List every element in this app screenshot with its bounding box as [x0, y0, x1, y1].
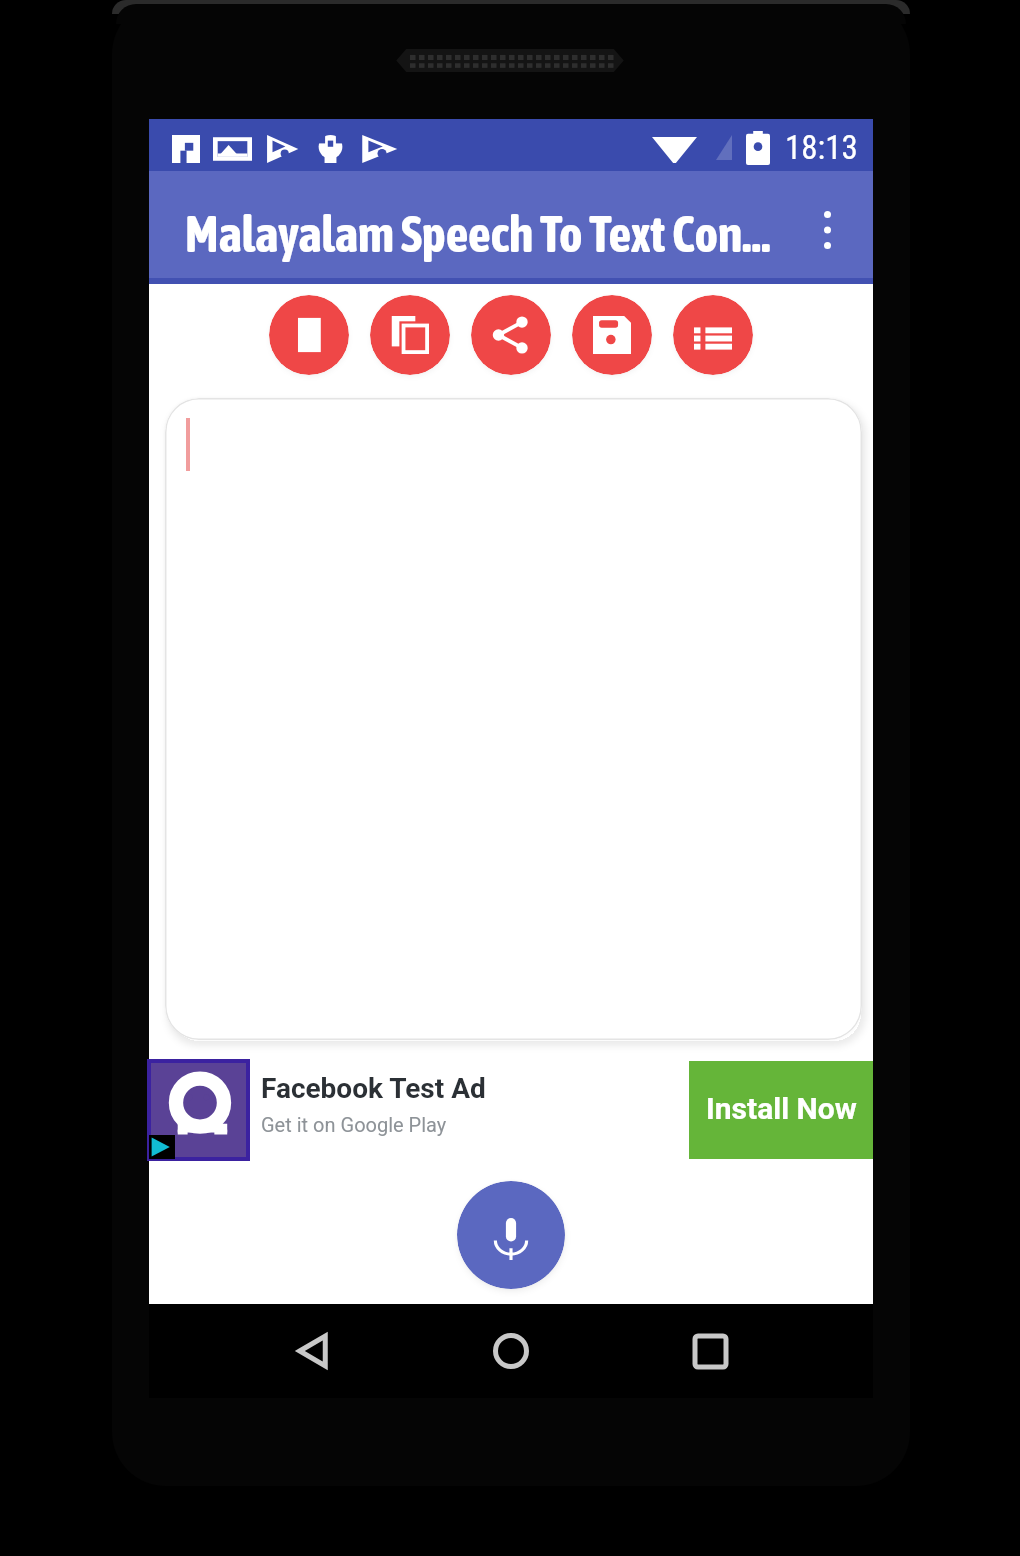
button[interactable]: Recent apps [674, 1315, 746, 1387]
button[interactable]: Saved list [673, 295, 753, 375]
button[interactable]: Copy text [370, 295, 450, 375]
button[interactable]: More options [799, 202, 855, 258]
button[interactable]: Advertisement [149, 1061, 248, 1159]
button[interactable] [165, 398, 862, 1040]
button[interactable]: Install Now [689, 1061, 873, 1159]
staticText: 18:13 [785, 128, 858, 167]
button[interactable]: Share text [471, 295, 551, 375]
button[interactable]: Home [475, 1315, 547, 1387]
button[interactable]: Clear text [269, 295, 349, 375]
button[interactable]: Start listening [457, 1181, 565, 1289]
button[interactable]: Facebook Test Ad [261, 1061, 689, 1159]
button[interactable]: Back [276, 1315, 348, 1387]
staticText: Malayalam Speech To Text Con… [185, 205, 771, 262]
staticText: Install Now [706, 1091, 857, 1126]
button[interactable]: Save text [572, 295, 652, 375]
staticText: Facebook Test Ad [261, 1072, 486, 1105]
staticText: Get it on Google Play [261, 1113, 447, 1136]
